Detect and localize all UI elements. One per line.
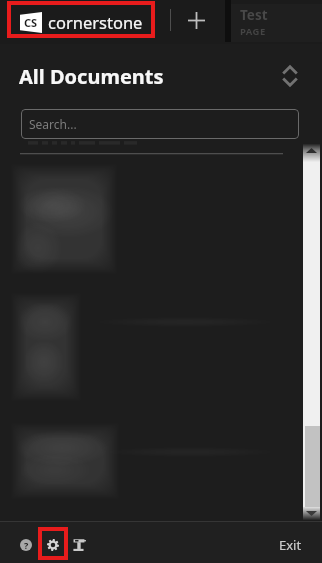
staticText: ? <box>24 539 29 551</box>
button[interactable]: Settings <box>40 532 66 558</box>
button[interactable]: Sort <box>279 64 300 87</box>
staticText: Test <box>240 6 268 24</box>
staticText: Exit <box>279 536 302 554</box>
button[interactable]: Tools <box>66 532 92 558</box>
button[interactable]: All Documents <box>19 63 164 90</box>
button[interactable]: Help <box>13 532 39 558</box>
button[interactable]: Scroll down <box>303 507 320 520</box>
staticText: Search... <box>29 116 77 132</box>
button[interactable]: Test <box>231 4 322 42</box>
button[interactable]: Exit <box>270 532 310 558</box>
staticText: CS <box>24 15 38 30</box>
button[interactable]: Scroll up <box>303 144 320 162</box>
button[interactable]: Search... <box>21 109 299 139</box>
button[interactable]: CS <box>20 0 143 44</box>
staticText: PAGE <box>240 25 266 38</box>
button[interactable]: New <box>182 6 210 34</box>
staticText: cornerstone <box>48 11 143 33</box>
